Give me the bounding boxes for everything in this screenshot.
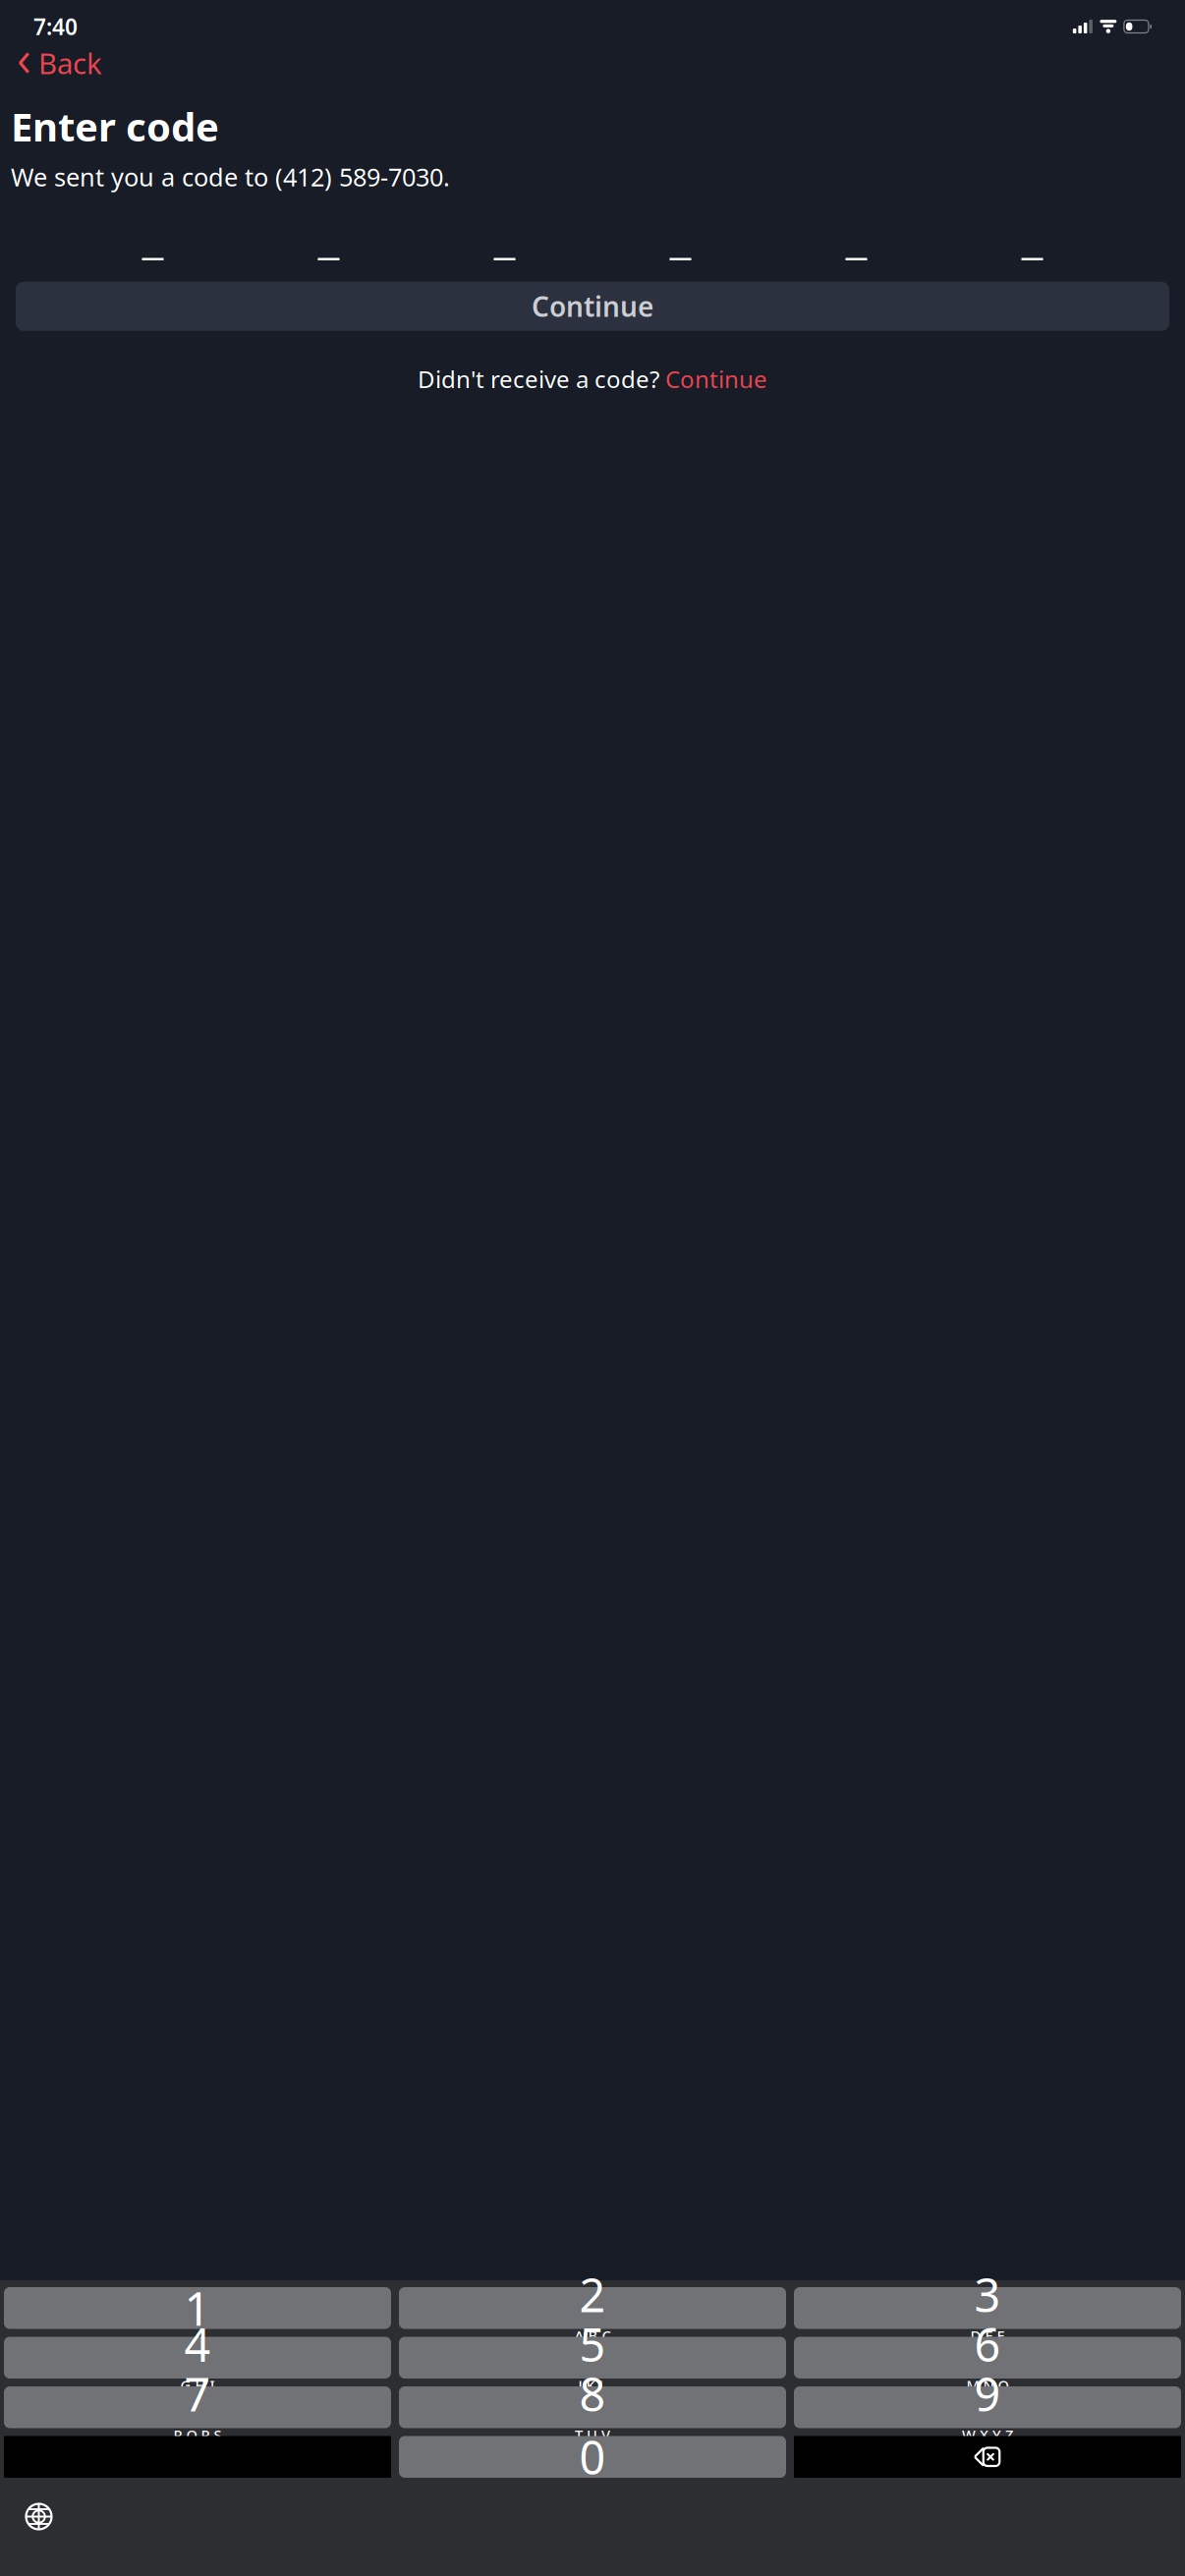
staticText: 6 xyxy=(974,2314,1001,2375)
button[interactable]: Continue xyxy=(665,363,767,395)
staticText: G H I xyxy=(180,2376,215,2395)
staticText: Didn't receive a code? xyxy=(418,363,659,395)
button[interactable]: 0 xyxy=(399,2436,786,2478)
staticText: P Q R S xyxy=(173,2425,222,2444)
staticText: 9 xyxy=(974,2363,1001,2424)
staticText: 5 xyxy=(579,2314,606,2375)
staticText: We sent you a code to (412) 589-7030. xyxy=(11,160,450,193)
staticText: 2 xyxy=(579,2264,606,2325)
button[interactable]: 5 xyxy=(399,2337,786,2379)
button[interactable]: 1 xyxy=(4,2287,391,2329)
staticText: J K L xyxy=(578,2376,607,2395)
staticText: Continue xyxy=(532,288,653,325)
button[interactable]: 4 xyxy=(4,2337,391,2379)
staticText: T U V xyxy=(575,2425,610,2444)
button[interactable]: 2 xyxy=(399,2287,786,2329)
staticText: Continue xyxy=(665,363,767,395)
staticText: 8 xyxy=(579,2363,606,2424)
button[interactable]: Delete xyxy=(794,2436,1181,2478)
staticText: M N O xyxy=(966,2376,1009,2395)
staticText: W X Y Z xyxy=(962,2425,1013,2444)
button[interactable]: 6 xyxy=(794,2337,1181,2379)
button[interactable]: 8 xyxy=(399,2386,786,2428)
staticText: Back xyxy=(38,44,102,82)
staticText: 3 xyxy=(974,2264,1001,2325)
staticText: 7:40 xyxy=(33,12,78,41)
staticText: Enter code xyxy=(11,100,219,152)
button[interactable]: Continue xyxy=(16,282,1169,331)
staticText: A B C xyxy=(574,2326,611,2345)
staticText: 7 xyxy=(184,2363,211,2424)
button[interactable]: Back xyxy=(0,41,1185,84)
staticText: 1 xyxy=(184,2278,211,2339)
staticText: D E F xyxy=(970,2326,1005,2345)
button[interactable]: 9 xyxy=(794,2386,1181,2428)
staticText: 4 xyxy=(184,2314,211,2375)
button[interactable]: 3 xyxy=(794,2287,1181,2329)
button[interactable]: Next keyboard xyxy=(0,2493,52,2540)
button[interactable]: 7 xyxy=(4,2386,391,2428)
staticText: 0 xyxy=(579,2426,606,2487)
